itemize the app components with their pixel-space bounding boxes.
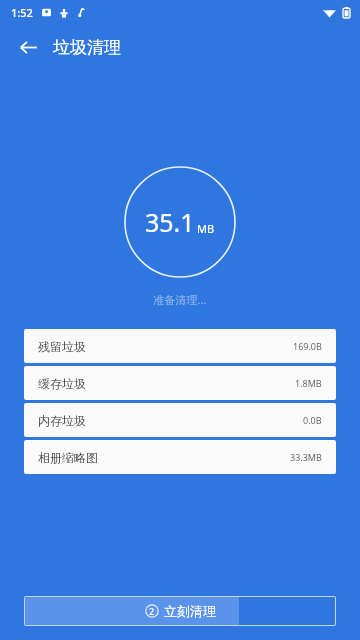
staticText: 缓存垃圾 (38, 376, 86, 391)
staticText: 内存垃圾 (38, 413, 86, 428)
staticText: 垃圾清理 (53, 37, 121, 58)
staticText: 169.0B (293, 340, 322, 352)
staticText: 残留垃圾 (38, 339, 86, 354)
staticText: MB (197, 221, 215, 236)
staticText: 35.1 (145, 205, 195, 239)
button[interactable]: 缓存垃圾 (24, 366, 336, 400)
staticText: 立刻清理 (164, 603, 216, 619)
staticText: 0.0B (303, 414, 322, 426)
staticText: 1:52 (11, 5, 33, 20)
button[interactable]: Back (8, 27, 48, 67)
staticText: 相册缩略图 (38, 450, 98, 465)
staticText: 2 (149, 605, 155, 617)
button[interactable]: 残留垃圾 (24, 329, 336, 363)
staticText: 33.3MB (290, 451, 322, 463)
staticText: 1.8MB (295, 377, 322, 389)
button[interactable]: 2 (25, 597, 335, 625)
button[interactable]: 相册缩略图 (24, 440, 336, 474)
button[interactable]: 内存垃圾 (24, 403, 336, 437)
staticText: 准备清理... (0, 292, 360, 307)
